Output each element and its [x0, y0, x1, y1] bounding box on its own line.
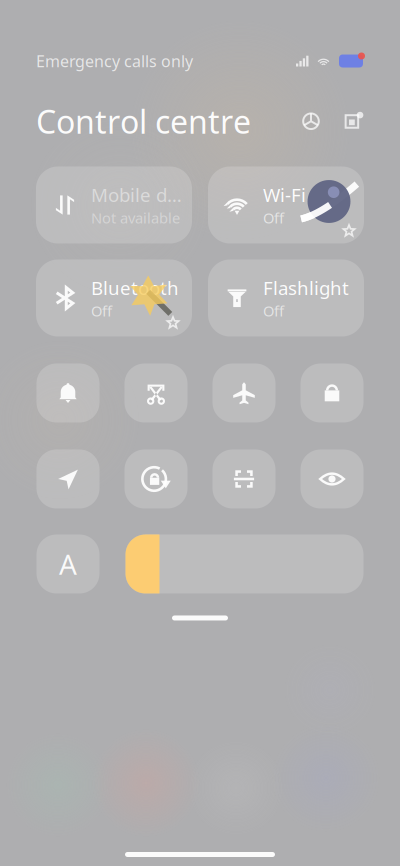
button[interactable]: Font size — [36, 534, 99, 593]
button[interactable]: Bluetooth — [36, 259, 192, 336]
button[interactable]: Location — [36, 449, 99, 508]
staticText: Off — [263, 301, 284, 321]
staticText: Off — [91, 301, 112, 321]
staticText: Wi-Fi — [263, 182, 306, 207]
button[interactable]: Brightness — [125, 534, 363, 593]
button[interactable]: Auto-rotate — [124, 449, 187, 508]
button[interactable]: Lock — [300, 363, 363, 422]
button[interactable]: Settings — [300, 110, 322, 132]
button[interactable]: Edit tiles — [342, 110, 364, 132]
staticText: Emergency calls only — [36, 50, 193, 72]
button[interactable]: Sound — [36, 363, 99, 422]
staticText: Off — [263, 208, 284, 228]
staticText: Control centre — [36, 100, 251, 142]
staticText: Not available — [91, 208, 180, 228]
staticText: A — [59, 545, 77, 583]
button[interactable]: Eye comfort — [300, 449, 363, 508]
button[interactable]: Screenshot — [124, 363, 187, 422]
button[interactable]: Scanner — [212, 449, 275, 508]
staticText: Flashlight — [263, 275, 349, 300]
button[interactable]: Mobile data — [36, 166, 192, 243]
staticText: Bluetooth — [91, 275, 179, 300]
button[interactable]: Flashlight — [208, 259, 364, 336]
button[interactable]: Wi-Fi — [208, 166, 364, 243]
staticText: Mobile data — [91, 182, 191, 207]
button[interactable]: Aeroplane mode — [212, 363, 275, 422]
